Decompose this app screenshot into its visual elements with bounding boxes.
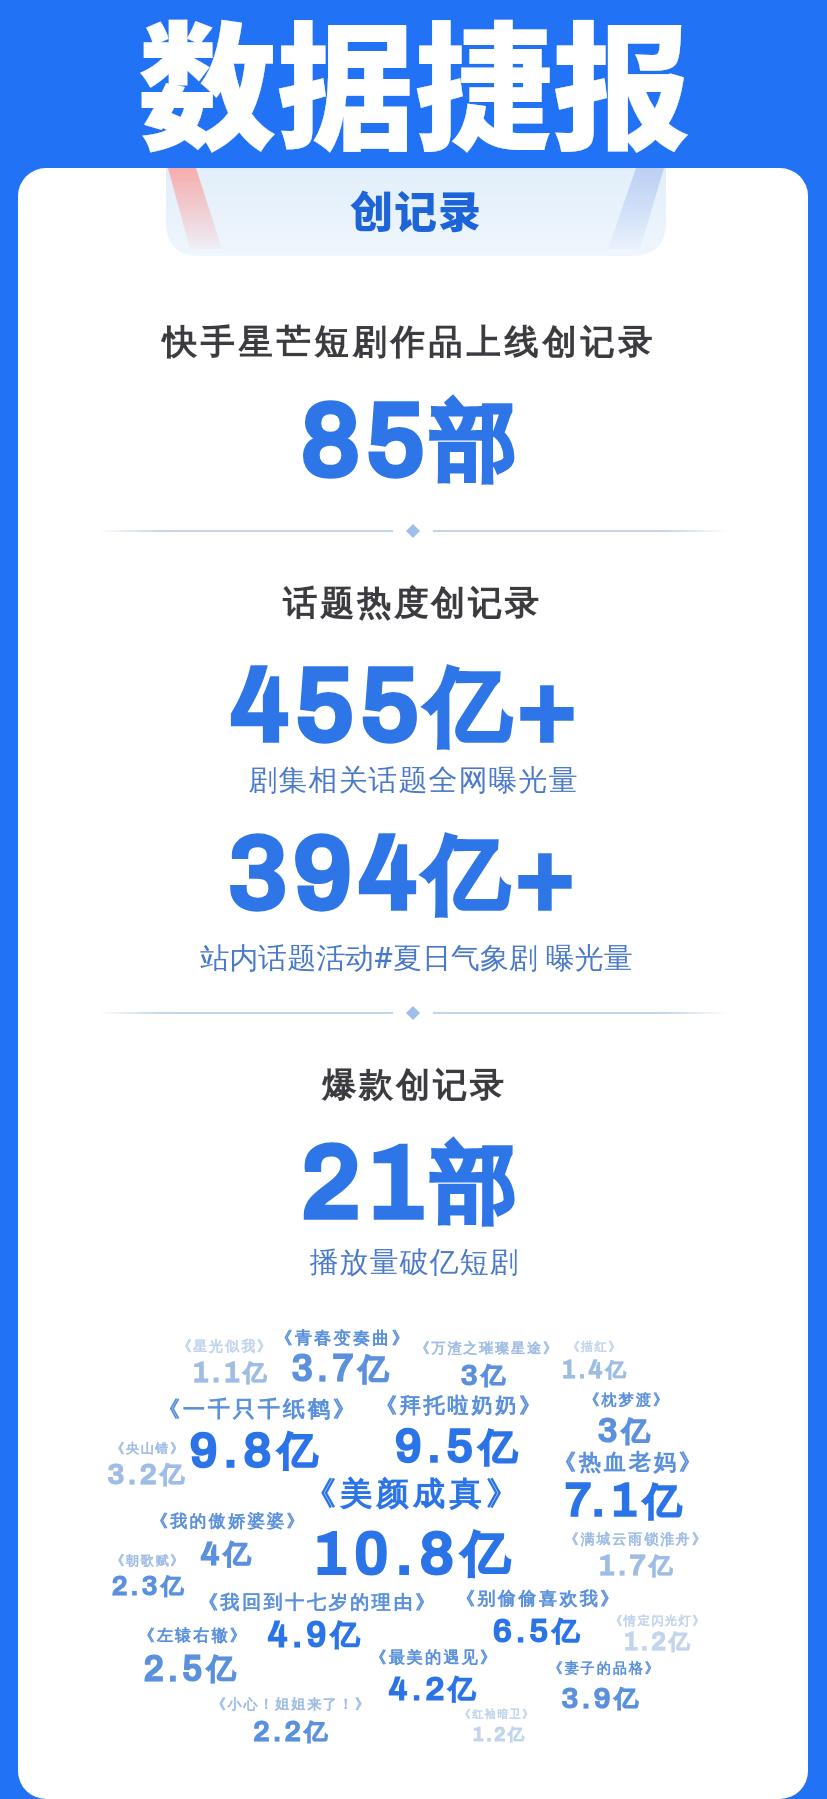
staticText: 《拜托啦奶奶》 xyxy=(375,1393,543,1419)
staticText: 《星光似我》 xyxy=(177,1338,273,1356)
staticText: 《红袖暗卫》 xyxy=(459,1707,535,1721)
staticText: 1.2亿 xyxy=(472,1723,526,1745)
staticText: 455亿+ xyxy=(229,648,585,763)
staticText: 4.9亿 xyxy=(267,1615,363,1654)
staticText: 9.5亿 xyxy=(394,1420,522,1472)
staticText: 《央山错》 xyxy=(110,1440,184,1456)
staticText: 1.2亿 xyxy=(623,1627,692,1655)
staticText: 1.4亿 xyxy=(561,1356,628,1383)
staticText: 《满城云雨锁淮舟》 xyxy=(564,1531,708,1549)
staticText: 《朝歌赋》 xyxy=(110,1552,184,1568)
staticText: 剧集相关话题全网曝光量 xyxy=(248,762,578,799)
staticText: 《热血老妈》 xyxy=(552,1449,702,1477)
staticText: 3亿 xyxy=(597,1411,653,1449)
staticText: 《一千只千纸鹤》 xyxy=(156,1396,356,1424)
staticText: 10.8亿 xyxy=(312,1520,516,1586)
staticText: 4亿 xyxy=(200,1535,254,1572)
staticText: 《小心！姐姐来了！》 xyxy=(211,1696,371,1714)
staticText: 《别偷偷喜欢我》 xyxy=(456,1588,621,1611)
staticText: 85部 xyxy=(300,383,519,498)
staticText: 《我的傲娇婆婆》 xyxy=(150,1511,306,1532)
staticText: 《枕梦渡》 xyxy=(584,1391,670,1410)
staticText: 2.2亿 xyxy=(253,1716,330,1748)
staticText: 2.5亿 xyxy=(143,1649,239,1688)
staticText: 《青春变奏曲》 xyxy=(275,1328,411,1349)
staticText: 9.8亿 xyxy=(189,1423,322,1477)
staticText: 《最美的遇见》 xyxy=(370,1648,498,1668)
staticText: 数据捷报 xyxy=(138,0,691,178)
staticText: 3.2亿 xyxy=(107,1458,187,1491)
button[interactable]: 创记录 xyxy=(166,168,666,256)
staticText: 3.7亿 xyxy=(291,1348,392,1389)
staticText: 创记录 xyxy=(350,178,482,240)
staticText: 《情定闪光灯》 xyxy=(610,1613,706,1628)
staticText: 站内话题活动#夏日气象剧 曝光量 xyxy=(200,937,633,977)
staticText: 《左辕右辙》 xyxy=(138,1626,248,1646)
staticText: 6.5亿 xyxy=(492,1612,583,1649)
staticText: 394亿+ xyxy=(227,816,583,931)
staticText: 2.3亿 xyxy=(111,1570,186,1600)
staticText: 播放量破亿短剧 xyxy=(309,1244,519,1281)
staticText: 《美颜成真》 xyxy=(303,1474,522,1514)
staticText: 快手星芒短剧作品上线创记录 xyxy=(160,321,654,364)
staticText: 《万渣之璀璨星途》 xyxy=(415,1340,559,1358)
staticText: 4.2亿 xyxy=(388,1670,479,1707)
staticText: 《妻子的品格》 xyxy=(548,1660,661,1678)
staticText: 3.9亿 xyxy=(561,1682,641,1715)
staticText: 3亿 xyxy=(460,1359,508,1392)
staticText: 7.1亿 xyxy=(564,1474,686,1526)
staticText: 21部 xyxy=(300,1125,519,1240)
staticText: 1.7亿 xyxy=(598,1550,675,1582)
staticText: 1.1亿 xyxy=(192,1357,269,1389)
staticText: 《我回到十七岁的理由》 xyxy=(198,1591,437,1615)
staticText: 话题热度创记录 xyxy=(281,582,540,625)
staticText: 《描红》 xyxy=(567,1339,622,1354)
staticText: 爆款创记录 xyxy=(320,1064,505,1107)
